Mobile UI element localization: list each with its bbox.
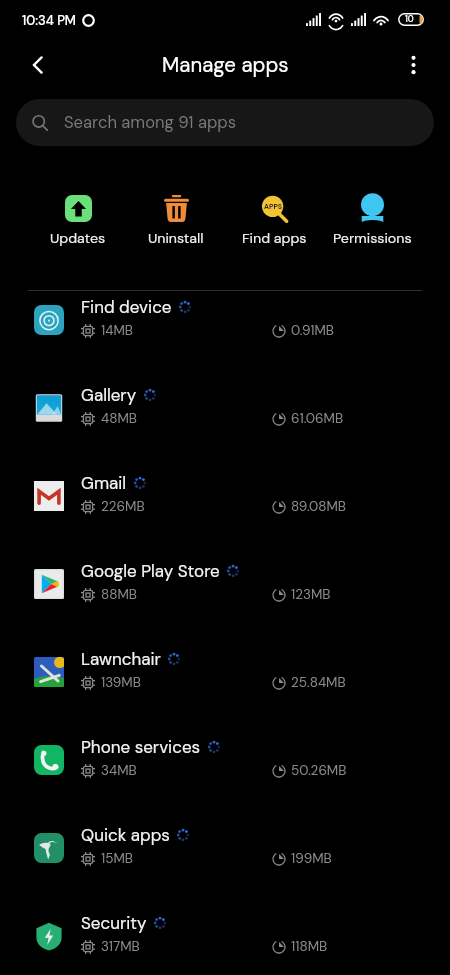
staticText: 226MB [101,498,145,516]
staticText: Quick apps [81,824,170,846]
staticText: Manage apps [162,52,289,79]
staticText: Lawnchair [81,648,161,670]
button[interactable]: APPS [225,195,323,247]
staticText: 118MB [291,938,328,956]
staticText: Security [81,912,147,934]
button[interactable]: Find device [0,291,450,379]
staticText: 89.08MB [291,498,346,516]
staticText: 48MB [101,410,137,428]
button[interactable]: Gmail [0,467,450,555]
staticText: 61.06MB [291,410,344,428]
staticText: Google Play Store [81,560,220,582]
button[interactable]: Google Play Store [0,555,450,643]
button[interactable]: Gallery [0,379,450,467]
staticText: 317MB [101,938,140,956]
staticText: 0.91MB [291,322,334,340]
staticText: 199MB [291,850,332,868]
staticText: 10 [405,14,414,25]
button[interactable]: Back [18,45,58,85]
staticText: Updates [50,229,106,247]
staticText: Permissions [333,229,412,247]
button[interactable]: Lawnchair [0,643,450,731]
staticText: Gmail [81,472,127,494]
staticText: 14MB [101,322,133,340]
button[interactable]: Permissions [323,195,421,247]
staticText: 123MB [291,586,331,604]
button[interactable]: Security [0,907,450,975]
button[interactable]: Phone services [0,731,450,819]
staticText: APPS [264,202,283,211]
button[interactable]: Uninstall [127,195,225,247]
button[interactable]: More options [393,45,433,85]
staticText: Phone services [81,736,201,758]
staticText: 50.26MB [291,762,347,780]
staticText: Search among 91 apps [64,112,237,134]
staticText: Find device [81,296,172,318]
staticText: Gallery [81,384,137,406]
button[interactable]: Quick apps [0,819,450,907]
staticText: 88MB [101,586,137,604]
button[interactable]: Search among 91 apps [16,99,434,146]
staticText: 139MB [101,674,141,692]
staticText: 25.84MB [291,674,346,692]
staticText: 10:34 PM [22,12,76,29]
staticText: 34MB [101,762,137,780]
staticText: Uninstall [148,229,204,247]
button[interactable]: Updates [29,195,127,247]
staticText: Find apps [242,229,307,247]
staticText: 15MB [101,850,133,868]
